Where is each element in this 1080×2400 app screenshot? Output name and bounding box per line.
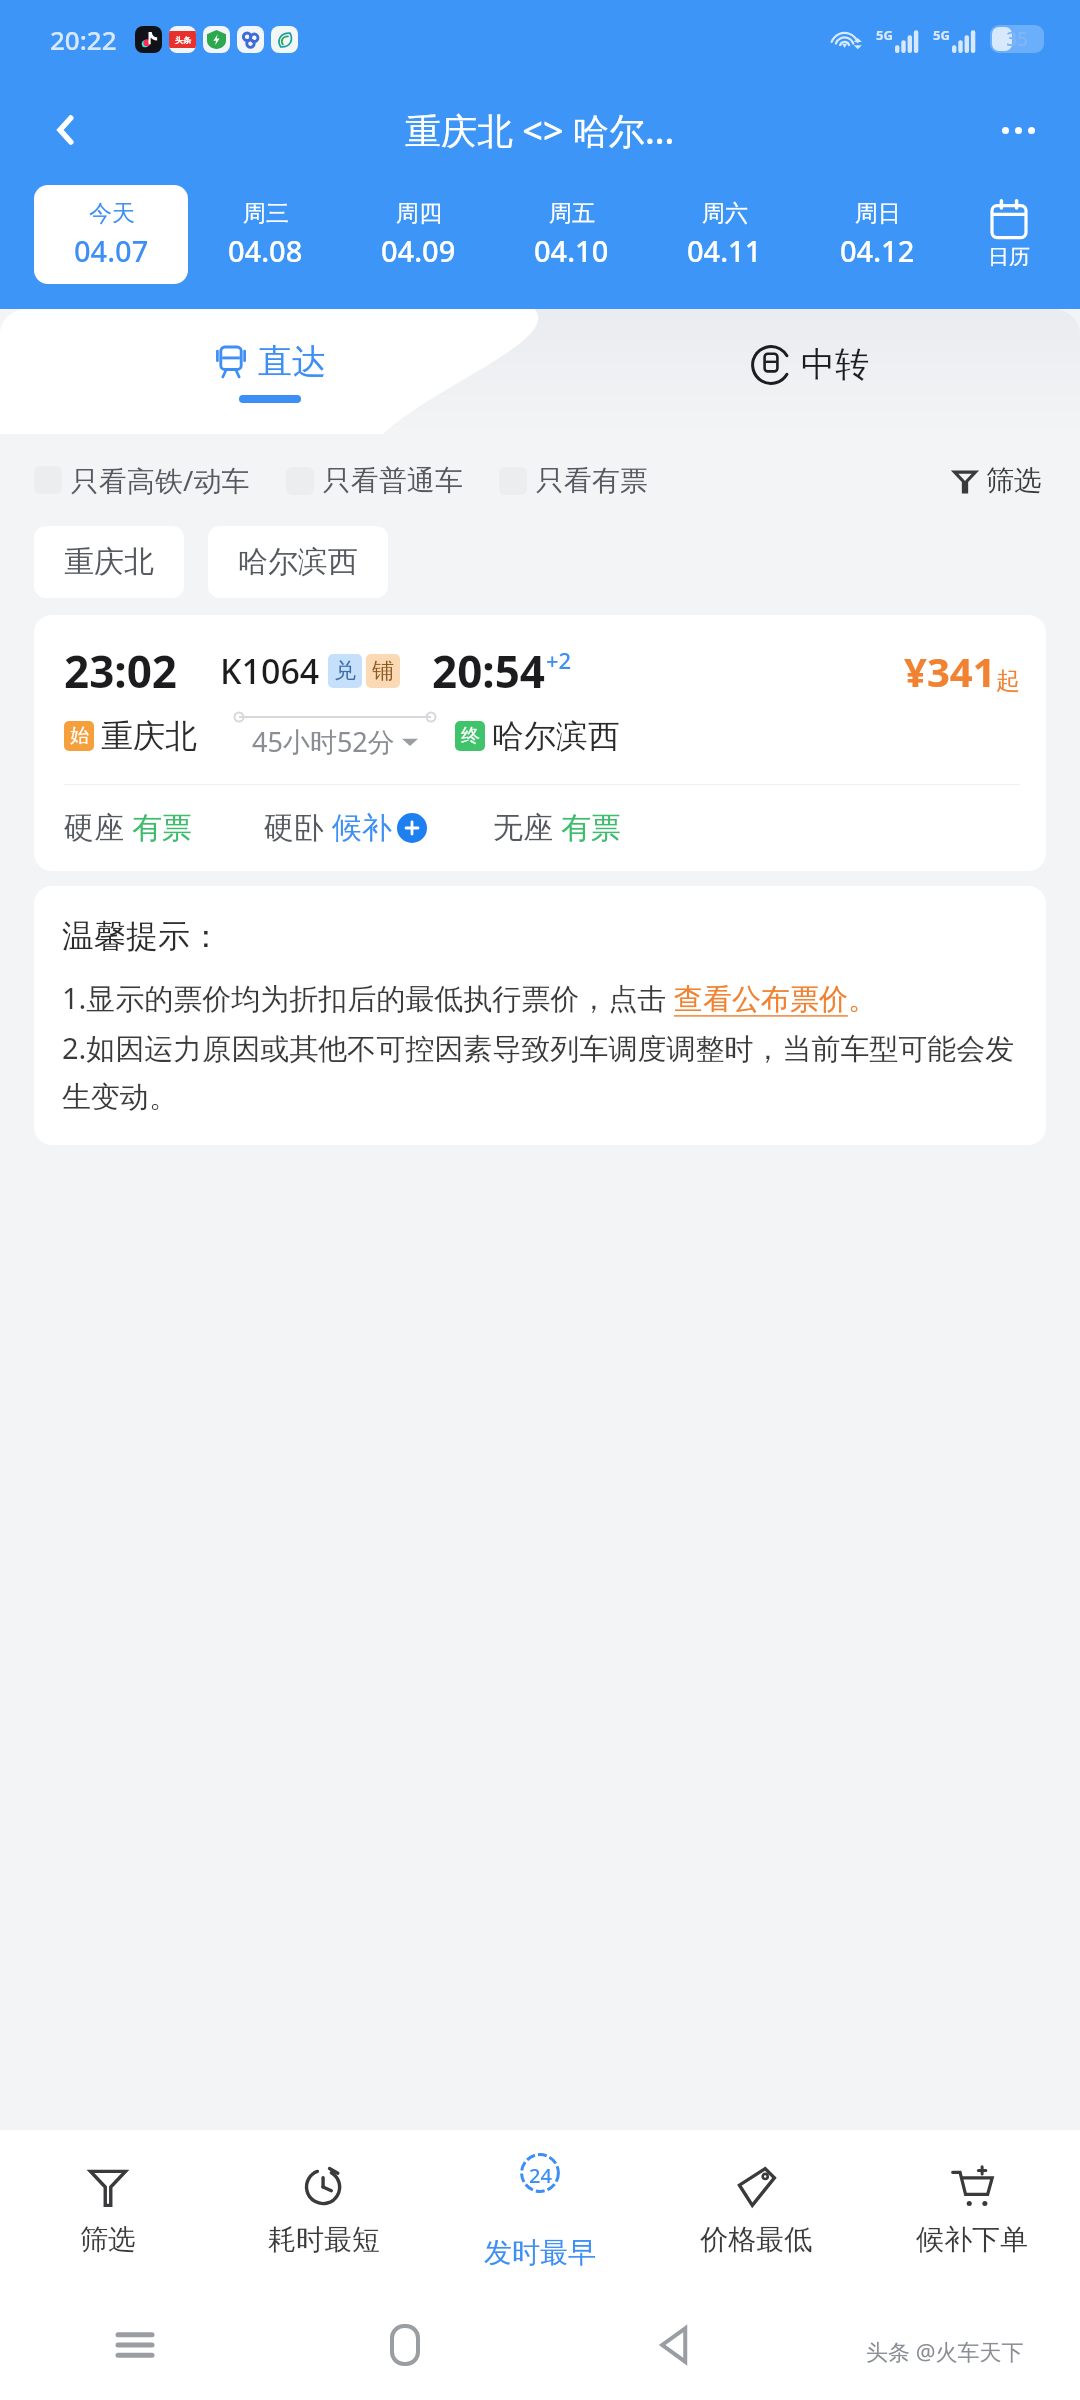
- staticText: 04.12: [840, 231, 915, 270]
- button[interactable]: Back: [30, 94, 102, 166]
- staticText: 温馨提示：: [62, 916, 222, 956]
- button[interactable]: 筛选: [0, 2130, 216, 2290]
- button[interactable]: 周四: [342, 185, 495, 284]
- staticText: 直达: [258, 340, 326, 383]
- other: Wi-Fi: [832, 27, 862, 51]
- button[interactable]: 重庆北: [34, 526, 184, 598]
- button[interactable]: 只看普通车: [286, 455, 463, 506]
- button[interactable]: 今天: [34, 185, 188, 284]
- staticText: 哈尔滨西: [238, 543, 358, 581]
- staticText: 5G: [933, 26, 950, 44]
- staticText: 23:02: [64, 641, 178, 701]
- button[interactable]: 只看有票: [499, 455, 648, 506]
- staticText: 45小时52分: [252, 723, 395, 760]
- other: Signal: [952, 29, 978, 53]
- staticText: 筛选: [80, 2222, 136, 2257]
- staticText: 头条: [175, 35, 191, 45]
- button[interactable]: Add waitlist: [397, 813, 427, 843]
- button[interactable]: 周五: [495, 185, 648, 284]
- staticText: 只看高铁/动车: [71, 461, 250, 499]
- button[interactable]: 中转: [540, 309, 1080, 434]
- other: Battery 35 percent: [990, 25, 1044, 53]
- staticText: 有票: [132, 809, 192, 847]
- staticText: 24: [529, 2162, 552, 2189]
- staticText: 04.10: [534, 231, 609, 270]
- button[interactable]: More options: [982, 94, 1054, 166]
- staticText: 周四: [396, 199, 442, 228]
- button[interactable]: 只看高铁/动车: [34, 453, 250, 507]
- staticText: 哈尔滨西: [492, 716, 620, 756]
- staticText: 04.09: [381, 231, 456, 270]
- button[interactable]: 23:02: [34, 615, 1046, 871]
- staticText: 2.如因运力原因或其他不可控因素导致列车调度调整时，当前车型可能会发生变动。: [62, 1028, 1018, 1115]
- staticText: 候补下单: [916, 2222, 1028, 2257]
- button[interactable]: 候补下单: [864, 2130, 1080, 2290]
- button[interactable]: 价格最低: [648, 2130, 864, 2290]
- staticText: 今天: [89, 199, 135, 228]
- staticText: 筛选: [986, 463, 1042, 498]
- button[interactable]: Home: [270, 2290, 540, 2400]
- button[interactable]: 耗时最短: [216, 2130, 432, 2290]
- staticText: 候补: [332, 809, 392, 847]
- staticText: 周三: [243, 199, 289, 228]
- button[interactable]: 周日: [801, 185, 954, 284]
- staticText: 日历: [988, 244, 1030, 270]
- staticText: K1064: [220, 648, 320, 694]
- button[interactable]: 筛选: [948, 457, 1046, 504]
- staticText: 起: [996, 666, 1020, 696]
- staticText: 周五: [549, 199, 595, 228]
- staticText: 周六: [702, 199, 748, 228]
- staticText: +2: [546, 645, 572, 675]
- staticText: 04.11: [687, 231, 762, 270]
- staticText: 周日: [855, 199, 901, 228]
- staticText: 重庆北 <> 哈尔...: [405, 106, 675, 155]
- staticText: 硬卧: [264, 809, 324, 847]
- staticText: 20:22: [50, 22, 117, 57]
- button[interactable]: 直达: [0, 309, 540, 434]
- staticText: 兑: [334, 657, 356, 685]
- staticText: 无座: [493, 809, 553, 847]
- staticText: 发时最早: [484, 2235, 596, 2270]
- staticText: 价格最低: [700, 2222, 812, 2257]
- button[interactable]: 日历: [954, 182, 1064, 287]
- button[interactable]: 24: [432, 2130, 648, 2290]
- staticText: 04.07: [74, 231, 149, 270]
- staticText: 20:54: [432, 641, 546, 701]
- staticText: 只看普通车: [323, 463, 463, 498]
- button[interactable]: 周六: [648, 185, 801, 284]
- staticText: 头条 @火车天下: [866, 2336, 1024, 2366]
- staticText: 重庆北: [64, 543, 154, 581]
- staticText: 1.显示的票价均为折扣后的最低执行票价，点击 查看公布票价。: [62, 978, 877, 1018]
- button[interactable]: Recent apps: [0, 2290, 270, 2400]
- staticText: 只看有票: [536, 463, 648, 498]
- staticText: ¥341: [904, 644, 996, 698]
- button[interactable]: 哈尔滨西: [208, 526, 388, 598]
- staticText: 重庆北: [101, 716, 197, 756]
- button[interactable]: 周三: [188, 185, 342, 284]
- staticText: 终: [461, 724, 480, 748]
- button[interactable]: Back: [540, 2290, 810, 2400]
- staticText: 5G: [876, 26, 893, 44]
- staticText: 铺: [372, 657, 394, 685]
- staticText: 04.08: [228, 231, 303, 270]
- staticText: 硬座: [64, 809, 124, 847]
- staticText: 耗时最短: [268, 2222, 380, 2257]
- staticText: 始: [70, 724, 89, 748]
- staticText: 有票: [561, 809, 621, 847]
- staticText: 35: [990, 26, 1044, 52]
- staticText: 中转: [801, 343, 869, 386]
- other: Signal: [895, 29, 921, 53]
